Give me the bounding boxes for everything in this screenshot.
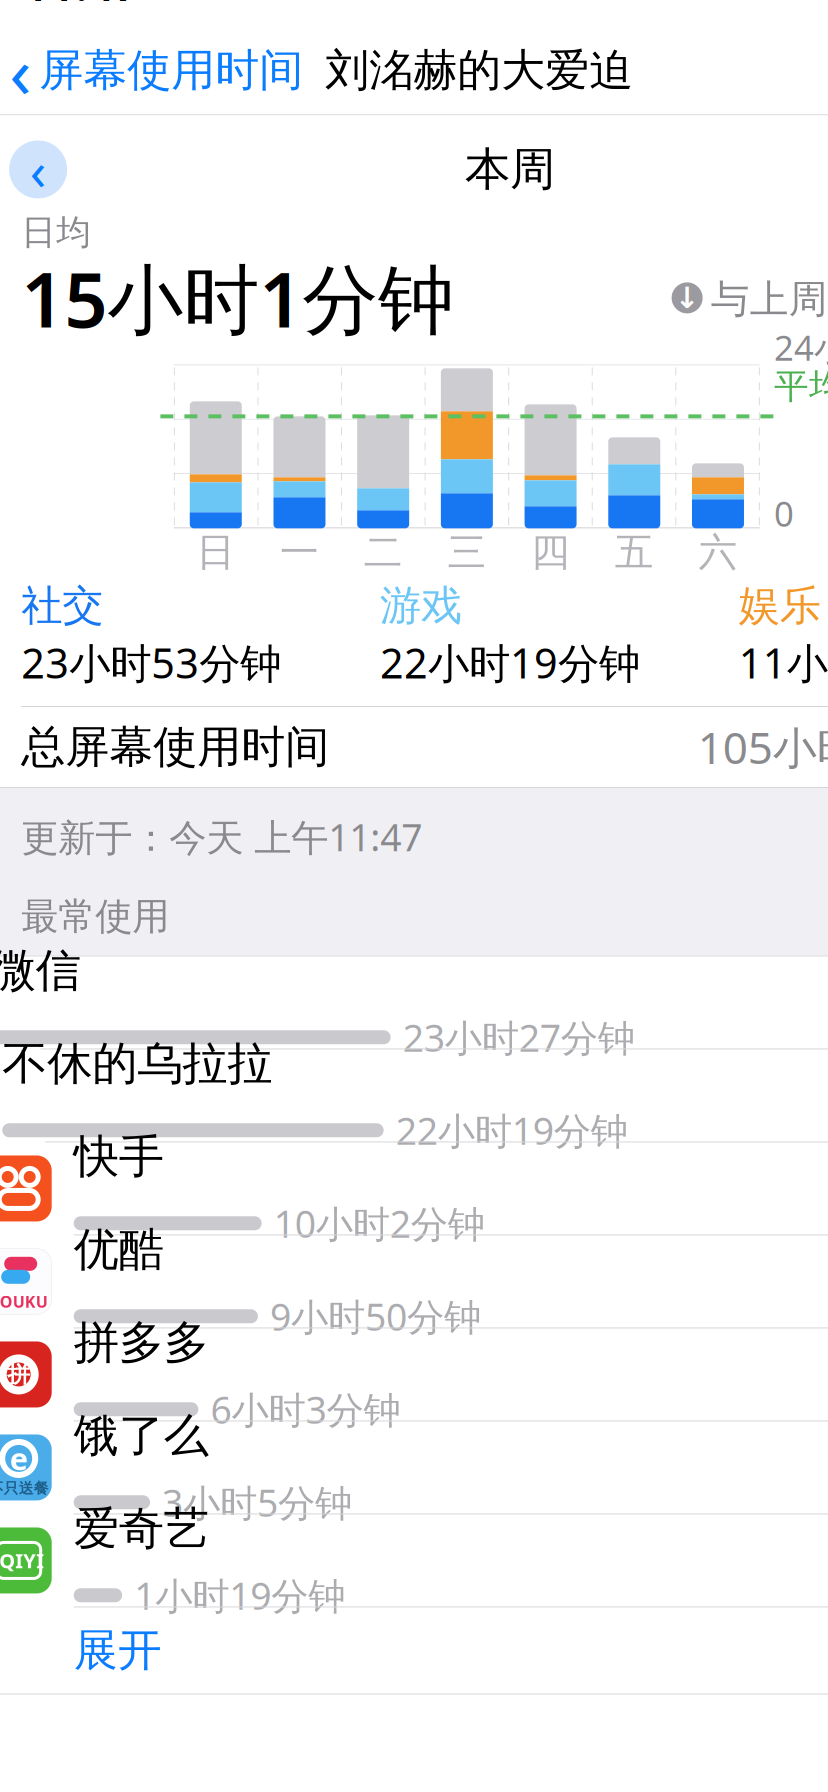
staticText: 快手	[74, 1129, 164, 1184]
staticText: 22小时19分钟	[380, 635, 640, 690]
staticText: ‹	[9, 23, 31, 118]
staticText: 刘洺赫的大爱迫	[325, 43, 633, 97]
staticText: 本周	[465, 142, 555, 197]
staticText: 10小时2分钟	[274, 1198, 485, 1248]
staticText: 105小时13分钟	[698, 718, 828, 776]
staticText: 总屏幕使用时间	[21, 720, 329, 774]
staticText: 游戏	[380, 580, 462, 631]
staticText: 1小时19分钟	[134, 1570, 345, 1620]
staticText: 屏幕使用时间	[39, 43, 303, 97]
button[interactable]: YOUKU	[0, 1235, 828, 1328]
staticText: 一	[280, 529, 319, 576]
button[interactable]: 总屏幕使用时间	[0, 707, 828, 787]
button[interactable]: 不休的乌拉拉	[0, 1049, 828, 1142]
staticText: 不休的乌拉拉	[2, 1036, 272, 1091]
staticText: 展开	[74, 1623, 162, 1677]
button[interactable]: 上一周	[9, 140, 67, 198]
staticText: 爱奇艺	[74, 1501, 209, 1556]
staticText: 24小时	[774, 324, 828, 370]
staticText: e	[10, 1438, 28, 1479]
staticText: 6小时3分钟	[210, 1384, 400, 1434]
staticText: 0	[774, 490, 794, 536]
staticText: 与上周比浮动7%	[711, 272, 828, 323]
staticText: 三	[447, 529, 486, 576]
staticText: 23小时27分钟	[403, 1012, 635, 1062]
staticText: iQIYI	[0, 1547, 44, 1574]
staticText: 22小时19分钟	[396, 1105, 628, 1155]
staticText: 娱乐	[739, 580, 821, 631]
button[interactable]: 快手	[0, 1142, 828, 1235]
staticText: 日	[196, 529, 235, 576]
staticText: 拼	[7, 1360, 30, 1388]
staticText: ↓	[675, 281, 700, 315]
staticText: 15小时1分钟	[21, 247, 454, 348]
staticText: 9小时50分钟	[270, 1291, 481, 1341]
button[interactable]: ‹	[9, 15, 303, 126]
staticText: 不只送餐	[0, 1479, 49, 1497]
staticText: 23小时53分钟	[21, 635, 281, 690]
staticText: 四	[531, 529, 570, 576]
staticText: 饿了么	[74, 1408, 209, 1463]
staticText: 优酷	[74, 1222, 164, 1277]
staticText: 日均	[21, 211, 91, 254]
staticText: 11:47	[23, 0, 140, 13]
staticText: 微信	[0, 943, 81, 998]
button[interactable]: iQIYI	[0, 1514, 828, 1607]
button[interactable]: e	[0, 1421, 828, 1514]
staticText: 五	[615, 529, 654, 576]
staticText: 拼多多	[74, 1315, 209, 1370]
staticText: 更新于：今天 上午11:47	[21, 812, 422, 862]
button[interactable]: 微信	[0, 956, 828, 1049]
staticText: 最常使用	[21, 894, 169, 939]
staticText: 3小时5分钟	[162, 1477, 352, 1527]
staticText: ‹	[30, 134, 47, 205]
staticText: 社交	[21, 580, 103, 631]
staticText: 平均	[774, 365, 828, 408]
button[interactable]: 展开	[0, 1607, 828, 1693]
staticText: 11小时56分钟	[739, 635, 828, 690]
staticText: 六	[698, 529, 737, 576]
staticText: YOUKU	[0, 1291, 48, 1312]
staticText: 二	[364, 529, 403, 576]
button[interactable]: 拼	[0, 1328, 828, 1421]
